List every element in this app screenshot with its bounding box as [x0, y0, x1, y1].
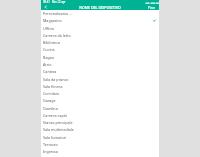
staticText: 08:51 — [43, 0, 50, 4]
button[interactable]: Corridoio — [41, 90, 159, 97]
staticText: Personalizzato ... — [43, 11, 156, 16]
staticText: Sala da pranzo — [43, 77, 156, 82]
button[interactable]: Camera ospiti — [41, 112, 159, 119]
button[interactable]: Stanza principale — [41, 119, 159, 126]
button[interactable]: Camera da letto — [41, 32, 159, 39]
button[interactable]: Cantina — [41, 68, 159, 75]
staticText: Ingresso — [43, 149, 156, 154]
staticText: Magazzino — [43, 18, 153, 23]
button[interactable]: Sala da pranzo — [41, 76, 159, 83]
staticText: NOME DEL DISPOSITIVO — [79, 5, 121, 10]
staticText: Cucina — [43, 47, 156, 52]
button[interactable]: Garage — [41, 97, 159, 104]
button[interactable]: Biblioteca — [41, 39, 159, 46]
button[interactable]: Ingresso — [41, 148, 159, 155]
button[interactable]: Sala fumatori — [41, 134, 159, 141]
button[interactable]: Cucina — [41, 46, 159, 53]
staticText: Sala fumatori — [43, 135, 156, 140]
staticText: Fine — [148, 5, 156, 10]
staticText: Stanza principale — [43, 120, 156, 125]
staticText: Terrazzo — [43, 142, 156, 147]
staticText: Garage — [43, 98, 156, 103]
staticText: Corridoio — [43, 91, 156, 96]
button[interactable]: Sala fitness — [41, 83, 159, 90]
staticText: Sala multimediale — [43, 127, 156, 132]
staticText: Biblioteca — [43, 40, 156, 45]
button[interactable]: Fine — [145, 4, 159, 10]
staticText: Bagno — [43, 55, 156, 60]
button[interactable]: Giardino — [41, 105, 159, 112]
button[interactable]: Bagno — [41, 54, 159, 61]
staticText: Mer 22 apr — [52, 0, 66, 4]
button[interactable]: Indietro — [41, 4, 51, 10]
staticText: Giardino — [43, 106, 156, 111]
staticText: Cantina — [43, 69, 156, 74]
button[interactable]: Personalizzato ... — [41, 10, 159, 17]
button[interactable]: Sala multimediale — [41, 126, 159, 133]
staticText: Camera da letto — [43, 33, 156, 38]
staticText: Atrio — [43, 62, 156, 67]
button[interactable]: Terrazzo — [41, 141, 159, 148]
button[interactable]: Magazzino — [41, 17, 159, 24]
staticText: Sala fitness — [43, 84, 156, 89]
staticText: Camera ospiti — [43, 113, 156, 118]
button[interactable]: Ufficio — [41, 25, 159, 32]
staticText: Ufficio — [43, 26, 156, 31]
button[interactable]: Atrio — [41, 61, 159, 68]
